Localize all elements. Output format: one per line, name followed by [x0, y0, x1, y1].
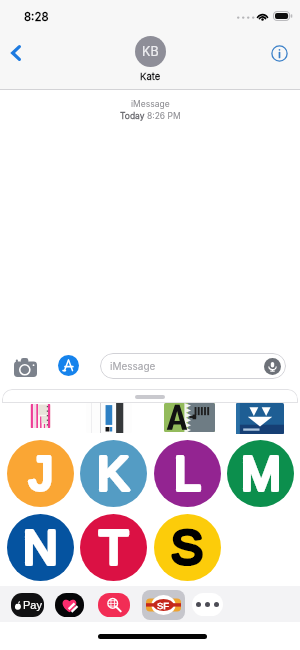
staticText: M [241, 447, 281, 501]
button[interactable]: KB [135, 36, 166, 82]
button[interactable]: Sticker T [80, 514, 147, 581]
staticText: T [99, 521, 129, 575]
staticText: T [99, 521, 129, 575]
staticText: J [29, 447, 53, 501]
button[interactable]: Sticker L [154, 440, 221, 507]
staticText: 8:28 [24, 10, 49, 24]
button[interactable]: Details [266, 40, 292, 66]
button[interactable]: Apple Pay [11, 593, 44, 617]
staticText: L [174, 447, 201, 501]
button[interactable]: SF stickers [142, 590, 185, 620]
button[interactable]: Sticker K [80, 440, 147, 507]
button[interactable]: Recent app 1 [30, 404, 51, 428]
staticText: Kate [140, 71, 161, 82]
staticText: Pay [23, 599, 42, 611]
button[interactable]: Recent app 3 [164, 403, 215, 432]
staticText: S [171, 521, 204, 575]
button[interactable]: iMessage [100, 353, 286, 379]
staticText: K [97, 447, 130, 501]
staticText: iMessage [131, 99, 170, 109]
staticText: J [29, 447, 53, 501]
staticText: K [97, 447, 130, 501]
staticText: iMessage [110, 360, 156, 372]
button[interactable]: Images [98, 593, 130, 617]
button[interactable]: Recent app 4 [236, 403, 284, 434]
button[interactable]: More apps [192, 593, 223, 616]
staticText: N [23, 521, 58, 575]
staticText: L [174, 447, 201, 501]
button[interactable]: Sticker S [154, 514, 221, 581]
staticText: S [171, 521, 204, 575]
staticText: N [23, 521, 58, 575]
button[interactable]: App Store [58, 355, 79, 376]
staticText: SF [157, 600, 170, 611]
button[interactable]: Recent app 2 [86, 403, 132, 433]
button[interactable]: Fitness [55, 593, 84, 617]
button[interactable]: Back [3, 40, 29, 66]
staticText: Today 8:26 PM [120, 111, 181, 121]
button[interactable]: Camera [11, 353, 39, 381]
button[interactable]: Sticker J [7, 440, 74, 507]
staticText: KB [142, 44, 159, 59]
button[interactable]: Sticker M [227, 440, 294, 507]
staticText: M [241, 447, 281, 501]
button[interactable]: Sticker N [7, 514, 74, 581]
